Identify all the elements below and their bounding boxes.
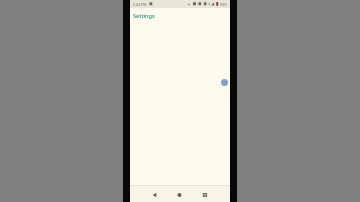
staticText: Settings bbox=[133, 12, 155, 20]
staticText: 89% bbox=[220, 2, 228, 7]
button[interactable] bbox=[221, 79, 228, 86]
button[interactable] bbox=[169, 187, 191, 201]
button[interactable] bbox=[144, 187, 166, 201]
button[interactable] bbox=[194, 187, 216, 201]
staticText: 5:04 PM bbox=[133, 2, 147, 7]
